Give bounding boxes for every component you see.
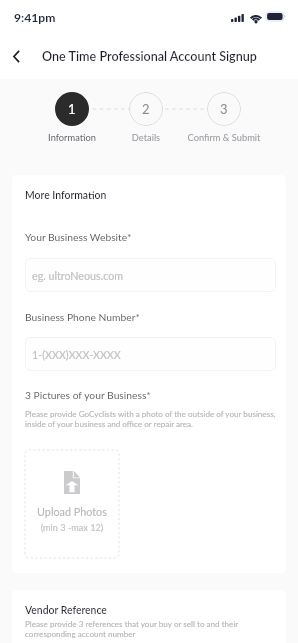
staticText: Details (86, 132, 206, 143)
button[interactable]: 2 (129, 92, 163, 126)
staticText: Vendor Reference (25, 604, 107, 616)
staticText: Information (12, 132, 132, 143)
button[interactable]: 1 (55, 92, 89, 126)
button[interactable]: 3 (207, 92, 241, 126)
staticText: Business Phone Number* (25, 311, 140, 323)
button[interactable]: Upload Photos (25, 450, 119, 558)
staticText: More Information (25, 189, 107, 201)
staticText: Confirm & Submit (164, 132, 284, 143)
button[interactable]: Back (3, 43, 29, 70)
staticText: Please provide 3 references that your bu… (25, 619, 239, 639)
staticText: eg. ultroNeous.com (32, 269, 123, 282)
staticText: 9:41pm (14, 10, 56, 25)
staticText: 1 (68, 101, 76, 117)
staticText: 3 Pictures of your Business* (25, 389, 151, 401)
staticText: (min 3 -max 12) (25, 522, 119, 533)
button[interactable]: 1-(XXX)XXX-XXXX (25, 337, 276, 371)
staticText: 1-(XXX)XXX-XXXX (32, 348, 121, 361)
button[interactable]: eg. ultroNeous.com (25, 258, 276, 292)
staticText: Please provide GoCyclists with a photo o… (25, 409, 276, 429)
staticText: Upload Photos (25, 505, 119, 518)
staticText: 3 (220, 101, 228, 117)
staticText: One Time Professional Account Signup (42, 49, 257, 64)
staticText: Your Business Website* (25, 231, 132, 243)
staticText: 2 (142, 101, 150, 117)
